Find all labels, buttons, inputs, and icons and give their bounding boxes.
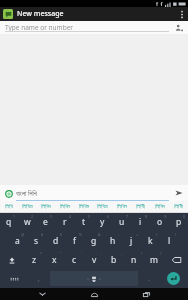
staticText: বাংলা লিখি <box>16 189 37 198</box>
button[interactable]: Symbols <box>0 269 29 288</box>
staticText: 8 <box>145 214 148 219</box>
staticText: Type name or number <box>5 23 74 32</box>
button[interactable]: - <box>103 231 122 250</box>
staticText: . <box>148 274 150 284</box>
staticText: 6 <box>107 214 110 219</box>
button[interactable]: Shift <box>0 250 24 269</box>
button[interactable]: 4 <box>55 213 74 231</box>
staticText: লিখিত <box>97 204 108 210</box>
button[interactable]: Back <box>32 288 52 300</box>
button[interactable]: 3 <box>36 213 55 231</box>
button[interactable]: Recent apps <box>136 288 156 300</box>
button[interactable]: % <box>65 231 84 250</box>
staticText: 7 <box>126 214 129 219</box>
staticText: @ <box>21 232 25 237</box>
button[interactable]: Attach <box>3 188 14 199</box>
staticText: লিখিন <box>60 204 70 210</box>
staticText: ' <box>81 251 82 256</box>
button[interactable]: 5 <box>74 213 93 231</box>
button[interactable]: লিখি <box>0 201 18 213</box>
staticText: a <box>15 235 20 247</box>
staticText: লিখিী <box>174 204 183 210</box>
staticText: j <box>130 235 133 247</box>
staticText: f <box>73 235 76 247</box>
staticText: New message <box>17 9 64 19</box>
button[interactable]: $ <box>46 231 65 250</box>
staticText: 4 <box>69 214 72 219</box>
button[interactable]: ; <box>104 250 124 269</box>
button[interactable]: ! <box>124 250 144 269</box>
button[interactable]: লিখিব <box>36 201 55 213</box>
button[interactable]: লিখিী <box>131 201 150 213</box>
staticText: c <box>72 254 77 266</box>
button[interactable]: " <box>44 250 64 269</box>
staticText: p <box>176 216 182 228</box>
button[interactable]: 7 <box>112 213 131 231</box>
button[interactable]: # <box>27 231 46 250</box>
button[interactable]: 6 <box>93 213 112 231</box>
staticText: + <box>136 232 139 237</box>
staticText: d <box>53 235 59 247</box>
button[interactable]: লিখিত <box>93 201 112 213</box>
staticText: 1 <box>13 214 16 219</box>
staticText: l <box>168 235 171 247</box>
button[interactable]: ' <box>64 250 84 269</box>
button[interactable]: ) <box>160 231 179 250</box>
staticText: x <box>52 254 57 266</box>
button[interactable]: Home <box>84 288 104 300</box>
staticText: লিখিম <box>79 204 89 210</box>
staticText: g <box>91 235 97 247</box>
staticText: " <box>60 251 62 256</box>
button[interactable]: : <box>84 250 104 269</box>
staticText: 2 <box>31 214 34 219</box>
button[interactable]: 0 <box>169 213 188 231</box>
staticText: $ <box>60 232 63 237</box>
button[interactable]: লিখিন <box>112 201 131 213</box>
staticText: s <box>34 235 39 247</box>
button[interactable]: * <box>24 250 44 269</box>
button[interactable]: 8 <box>131 213 150 231</box>
staticText: লিখিত <box>22 204 33 210</box>
button[interactable]: Send <box>172 186 186 200</box>
staticText: , <box>38 274 40 284</box>
staticText: e <box>43 216 48 228</box>
staticText: লিখিী <box>136 204 145 210</box>
staticText: m <box>150 254 158 266</box>
staticText: i <box>139 216 142 228</box>
staticText: w <box>24 216 31 228</box>
staticText: k <box>148 235 153 247</box>
staticText: q <box>6 216 12 228</box>
staticText: ( <box>156 232 158 237</box>
staticText: ; <box>121 251 122 256</box>
staticText: 3 <box>50 214 53 219</box>
button[interactable]: ( <box>141 231 160 250</box>
button[interactable]: More options <box>176 7 188 21</box>
staticText: u <box>119 216 125 228</box>
button[interactable]: ? <box>144 250 164 269</box>
button[interactable]: & <box>84 231 103 250</box>
button[interactable]: লিখিব <box>150 201 169 213</box>
staticText: 5 <box>88 214 91 219</box>
button[interactable]: 1 <box>0 213 18 231</box>
button[interactable]: লিখিত <box>18 201 36 213</box>
staticText: 9 <box>164 214 167 219</box>
button[interactable]: লিখিন <box>55 201 74 213</box>
button[interactable]: Add recipient from contacts <box>172 21 186 34</box>
button[interactable]: লিখিী <box>169 201 188 213</box>
staticText: v <box>92 254 97 266</box>
button[interactable]: @ <box>8 231 27 250</box>
button[interactable]: Delete <box>164 250 188 269</box>
button[interactable]: 9 <box>150 213 169 231</box>
button[interactable]: Up <box>3 9 13 19</box>
staticText: লিখিন <box>117 204 127 210</box>
button[interactable]: Space <box>50 271 138 286</box>
button[interactable]: + <box>122 231 141 250</box>
staticText: o <box>157 216 163 228</box>
staticText: 0 <box>183 214 186 219</box>
staticText: লিখিব <box>41 204 51 210</box>
button[interactable]: 2 <box>18 213 36 231</box>
button[interactable]: লিখিম <box>74 201 93 213</box>
button[interactable]: Enter <box>167 272 180 285</box>
